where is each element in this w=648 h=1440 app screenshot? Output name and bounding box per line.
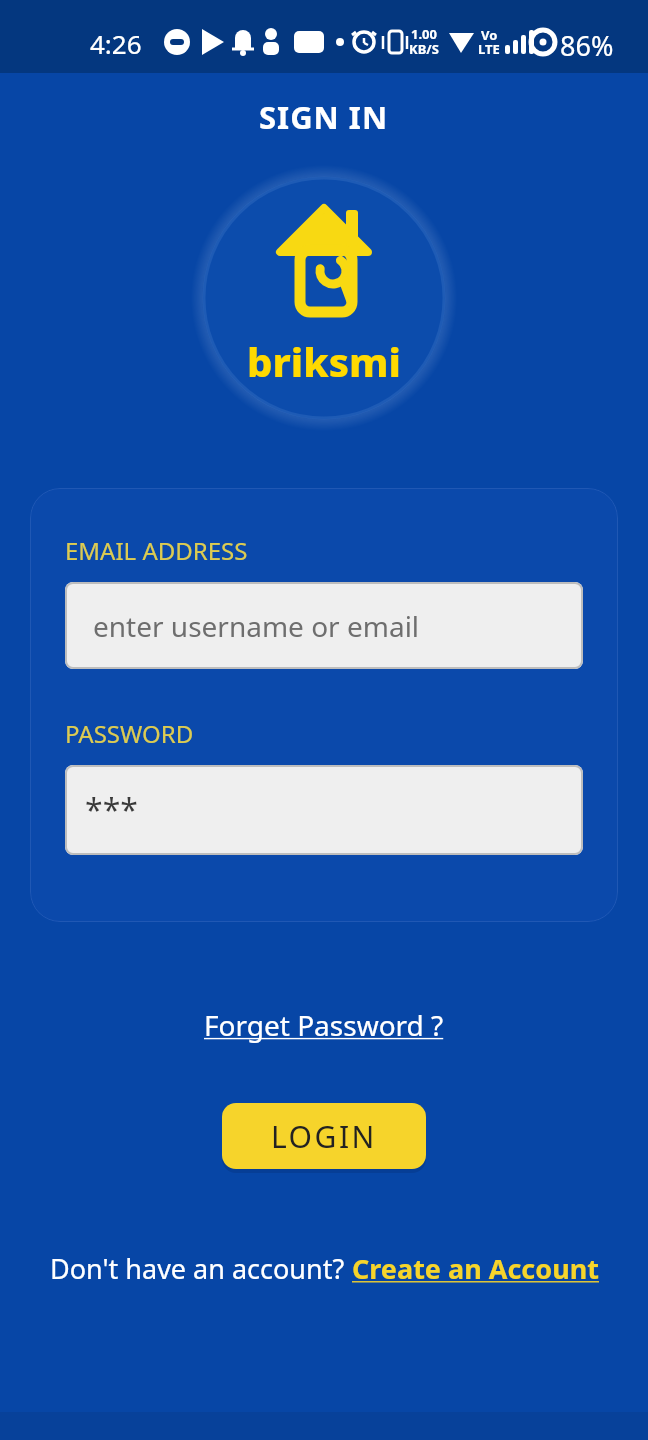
button[interactable]: LOGIN (222, 1103, 426, 1169)
staticText: *** (85, 788, 138, 832)
button[interactable]: Forget Password ? (204, 1006, 444, 1044)
staticText: SIGN IN (259, 96, 389, 138)
staticText: Vo (481, 26, 498, 44)
staticText: LOGIN (271, 1116, 377, 1157)
button[interactable]: Create an Account (352, 1250, 599, 1287)
button[interactable]: enter username or email (65, 582, 583, 669)
staticText: briksmi (247, 334, 401, 388)
staticText: KB/S (409, 40, 439, 58)
staticText: LTE (478, 40, 500, 58)
staticText: 86% (560, 27, 614, 64)
staticText: Don't have an account? (50, 1250, 352, 1287)
button[interactable]: *** (65, 765, 583, 855)
staticText: 4:26 (90, 26, 142, 61)
staticText: PASSWORD (65, 717, 194, 750)
staticText: EMAIL ADDRESS (65, 534, 248, 567)
staticText: enter username or email (93, 607, 420, 645)
staticText: 1.00 (411, 25, 437, 43)
